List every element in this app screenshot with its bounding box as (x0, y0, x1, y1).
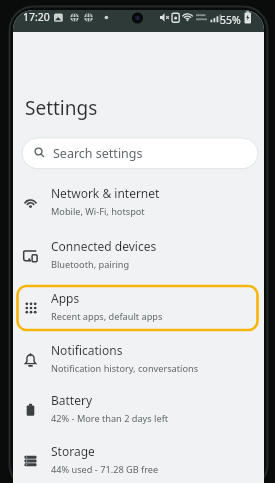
staticText: Battery (51, 392, 93, 408)
staticText: 44% used - 71.28 GB free (51, 463, 159, 476)
staticText: Connected devices (51, 238, 157, 254)
staticText: Apps (51, 290, 80, 306)
staticText: Search settings (53, 145, 143, 162)
staticText: Network & internet (51, 185, 160, 201)
staticText: Recent apps, default apps (51, 310, 163, 323)
staticText: 42% - More than 2 days left (51, 412, 169, 425)
staticText: Bluetooth, pairing (51, 258, 130, 271)
staticText: Mobile, Wi-Fi, hotspot (51, 205, 145, 218)
staticText: 55% (220, 13, 241, 27)
staticText: 17:20 (23, 10, 50, 24)
staticText: Notification history, conversations (51, 362, 199, 375)
staticText: Settings (25, 95, 98, 121)
staticText: Notifications (51, 342, 123, 358)
staticText: Storage (51, 443, 95, 459)
